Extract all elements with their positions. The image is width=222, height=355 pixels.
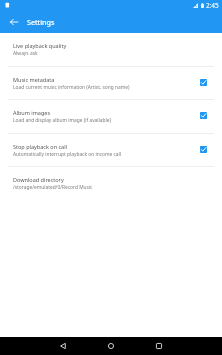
staticText: Stop playback on call	[13, 143, 68, 150]
staticText: Download directory	[13, 176, 64, 183]
staticText: Live playback quality	[13, 42, 67, 49]
staticText: Load current music information (Artist, …	[13, 84, 130, 91]
button[interactable]: Music metadata	[197, 76, 209, 88]
staticText: Always ask	[13, 50, 38, 57]
staticText: Album images	[13, 109, 51, 116]
staticText: Music metadata	[13, 76, 55, 83]
staticText: Load and display album image (if availab…	[13, 117, 111, 124]
button[interactable]: Stop playback on call	[0, 134, 222, 166]
button[interactable]: Live playback quality	[0, 33, 222, 66]
button[interactable]: Back	[54, 337, 72, 355]
button[interactable]: Recent apps	[150, 337, 168, 355]
button[interactable]: Album images	[197, 109, 209, 121]
staticText: /storage/emulated/0/Record Music	[13, 184, 93, 191]
staticText: Automatically interrupt playback on inco…	[13, 151, 122, 158]
button[interactable]: Album images	[0, 100, 222, 133]
button[interactable]: Download directory	[0, 167, 222, 201]
staticText: 2:45	[206, 1, 219, 10]
staticText: Settings	[27, 17, 55, 27]
button[interactable]: Back	[6, 14, 22, 30]
button[interactable]: Music metadata	[0, 67, 222, 99]
button[interactable]: Home	[102, 337, 120, 355]
button[interactable]: Stop playback on call	[197, 143, 209, 155]
